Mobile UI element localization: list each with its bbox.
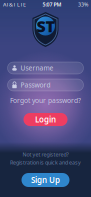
button[interactable]: Login	[23, 113, 67, 126]
button[interactable]: Forgot your password?	[10, 97, 81, 104]
staticText: Sign Up	[31, 175, 60, 185]
staticText: Forgot your password?	[10, 96, 81, 105]
staticText: ST	[36, 15, 54, 37]
staticText: Login	[35, 114, 56, 125]
staticText: AT&T LTE	[3, 1, 26, 8]
button[interactable]: Password	[7, 79, 83, 91]
staticText: Not yet registered?	[22, 151, 68, 158]
staticText: 5:07 PM	[42, 1, 61, 8]
staticText: Registration is quick and easy	[10, 159, 81, 166]
button[interactable]: Username	[7, 62, 83, 74]
staticText: Password	[20, 81, 50, 89]
staticText: Username	[20, 64, 53, 72]
staticText: 33%	[78, 1, 88, 8]
button[interactable]: Sign Up	[21, 173, 69, 187]
